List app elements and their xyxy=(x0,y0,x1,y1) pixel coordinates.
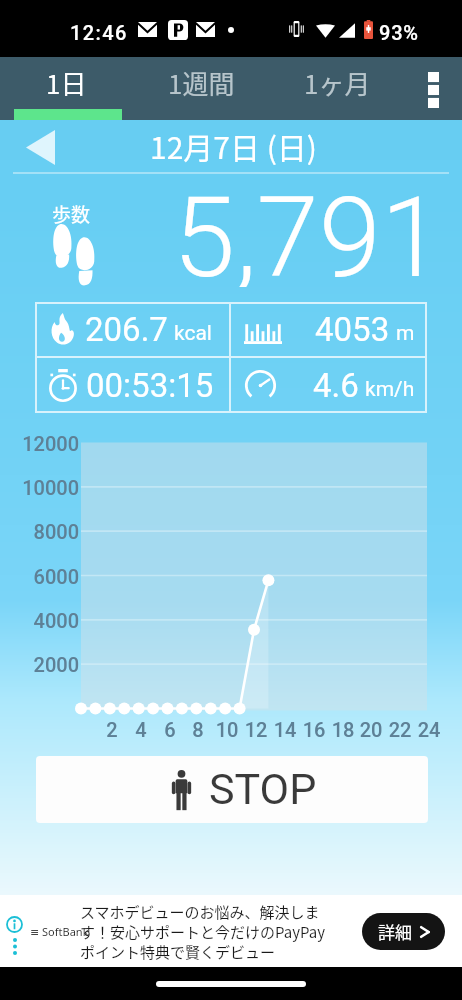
staticText: STOP xyxy=(209,764,317,814)
staticText: 詳細 xyxy=(378,919,412,944)
button[interactable]: Previous day xyxy=(16,123,64,171)
staticText: 2000 xyxy=(2,653,79,676)
staticText: 2 xyxy=(92,718,132,741)
staticText: 4.6 xyxy=(313,366,359,405)
staticText: 22 xyxy=(380,718,420,741)
button[interactable]: STOP xyxy=(36,756,428,823)
staticText: 24 xyxy=(409,718,449,741)
button[interactable]: 4.6 xyxy=(231,358,427,413)
staticText: 4 xyxy=(121,718,161,741)
staticText: m xyxy=(396,321,415,346)
staticText: 12:46 xyxy=(70,21,128,44)
button[interactable]: 1週間 xyxy=(133,57,270,120)
staticText: 16 xyxy=(294,718,334,741)
button[interactable]: 1ヶ月 xyxy=(270,57,405,120)
staticText: 6000 xyxy=(2,565,79,588)
staticText: 93% xyxy=(379,21,419,44)
button[interactable]: 1日 xyxy=(0,57,133,120)
staticText: 12月7日 (日) xyxy=(150,124,317,167)
staticText: 1日 xyxy=(46,64,87,102)
staticText: 206.7 xyxy=(85,310,168,349)
staticText: 10000 xyxy=(2,476,79,499)
staticText: 6 xyxy=(150,718,190,741)
button[interactable]: 詳細 xyxy=(362,913,445,950)
staticText: 8000 xyxy=(2,520,79,543)
staticText: 20 xyxy=(351,718,391,741)
staticText: km/h xyxy=(365,377,415,402)
staticText: 歩数 xyxy=(52,200,91,228)
staticText: スマホデビューのお悩み、解決します！安心サポートと今だけのPayPayポイント特… xyxy=(80,901,338,962)
staticText: 1週間 xyxy=(168,64,235,102)
staticText: 12 xyxy=(236,718,276,741)
staticText: 8 xyxy=(178,718,218,741)
staticText: 00:53:15 xyxy=(86,366,214,405)
staticText: 1ヶ月 xyxy=(304,64,371,102)
staticText: 18 xyxy=(323,718,363,741)
button[interactable]: Ad info xyxy=(6,916,23,955)
button[interactable]: 4053 xyxy=(231,302,427,356)
staticText: 14 xyxy=(265,718,305,741)
button[interactable]: 206.7 xyxy=(35,302,229,356)
staticText: kcal xyxy=(174,321,212,346)
staticText: ≡ SoftBank xyxy=(30,924,89,939)
staticText: 4053 xyxy=(315,310,390,349)
staticText: 10 xyxy=(207,718,247,741)
staticText: 5,791 xyxy=(173,172,443,287)
staticText: 4000 xyxy=(2,609,79,632)
button[interactable]: 00:53:15 xyxy=(35,358,229,413)
button[interactable]: More options xyxy=(405,57,462,120)
staticText: 12000 xyxy=(2,432,79,455)
